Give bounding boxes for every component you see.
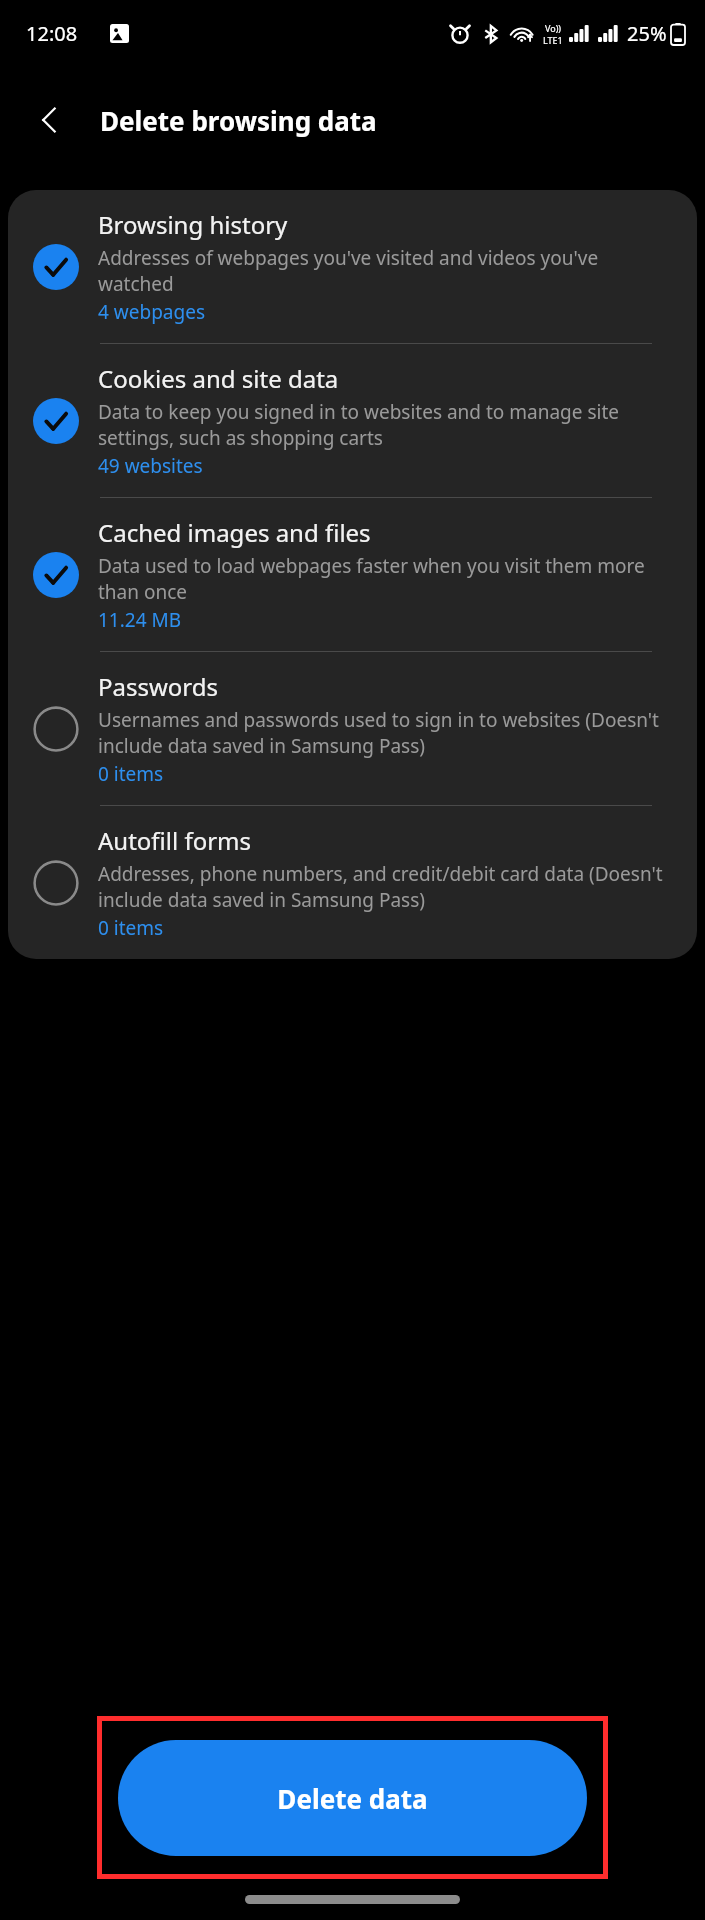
staticText: 4 webpages — [98, 299, 205, 325]
button[interactable]: Cookies and site data — [8, 344, 697, 497]
staticText: 0 items — [98, 915, 164, 941]
staticText: Delete browsing data — [100, 103, 377, 138]
staticText: Autofill forms — [98, 824, 252, 857]
staticText: 25% — [627, 20, 667, 47]
staticText: 12:08 — [26, 20, 78, 47]
staticText: Delete data — [277, 1781, 428, 1816]
staticText: Browsing history — [98, 208, 288, 241]
button[interactable]: Browsing history — [8, 190, 697, 343]
staticText: 11.24 MB — [98, 607, 182, 633]
button[interactable]: Passwords — [8, 652, 697, 805]
button[interactable]: Cached images and files — [8, 498, 697, 651]
staticText: 0 items — [98, 761, 164, 787]
staticText: Data to keep you signed in to websites a… — [98, 399, 675, 451]
staticText: Vo)) — [545, 22, 562, 34]
staticText: LTE1 — [543, 34, 563, 46]
staticText: Addresses of webpages you've visited and… — [98, 245, 675, 297]
staticText: Cached images and files — [98, 516, 371, 549]
staticText: Usernames and passwords used to sign in … — [98, 707, 675, 759]
staticText: Cookies and site data — [98, 362, 339, 395]
button[interactable]: Delete data — [118, 1740, 587, 1856]
staticText: Passwords — [98, 670, 219, 703]
button[interactable]: Autofill forms — [8, 806, 697, 959]
staticText: 49 websites — [98, 453, 203, 479]
staticText: Data used to load webpages faster when y… — [98, 553, 675, 605]
button[interactable]: Navigate up — [22, 92, 78, 148]
staticText: Addresses, phone numbers, and credit/deb… — [98, 861, 675, 913]
